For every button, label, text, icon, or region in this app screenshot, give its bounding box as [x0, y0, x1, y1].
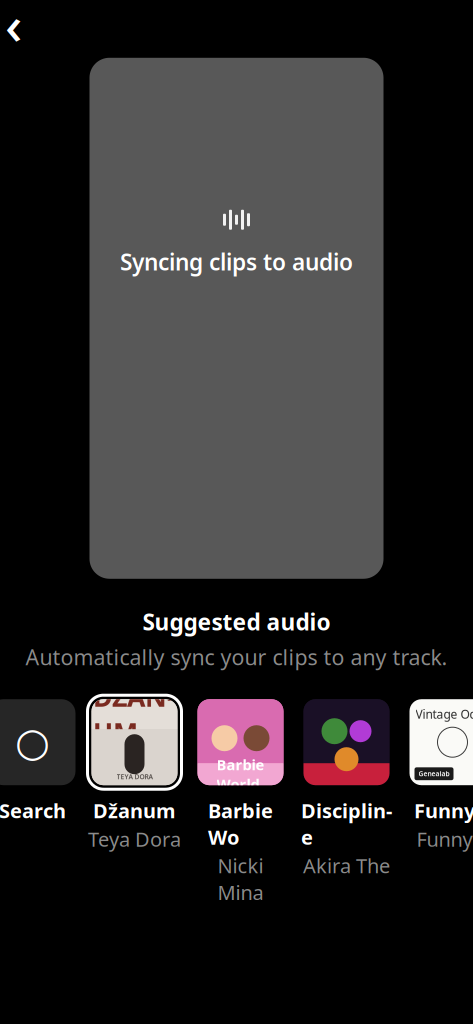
staticText: Automatically sync your clips to any tra… [25, 643, 447, 671]
staticText: Search [0, 797, 66, 824]
staticText: ‹ [5, 0, 22, 59]
staticText: Discipline [301, 797, 392, 850]
staticText: Funny S [416, 826, 473, 852]
staticText: Suggested audio [142, 607, 330, 637]
staticText: Džanum [93, 797, 176, 824]
staticText: Akira The [303, 852, 390, 879]
staticText: Barbie World [216, 755, 264, 794]
staticText: Barbie Wo [208, 797, 273, 850]
button[interactable]: Back [0, 2, 35, 46]
staticText: Vintage Odes [415, 706, 473, 722]
staticText: ○ [15, 719, 50, 765]
staticText: Teya Dora [88, 826, 181, 852]
staticText: Syncing clips to audio [120, 247, 353, 277]
button[interactable]: Discipline [299, 695, 393, 879]
staticText: Funny S [414, 797, 473, 824]
staticText: Nicki Mina [217, 852, 263, 905]
staticText: TEYA DORA [116, 772, 152, 781]
button[interactable]: Barbie World [193, 695, 287, 905]
staticText: Genealab [418, 769, 449, 778]
button[interactable]: Vintage Odes [405, 695, 473, 852]
staticText: DŽANUM [93, 679, 176, 750]
button[interactable]: ○ [0, 695, 75, 905]
button[interactable]: DŽANUM [87, 695, 181, 852]
